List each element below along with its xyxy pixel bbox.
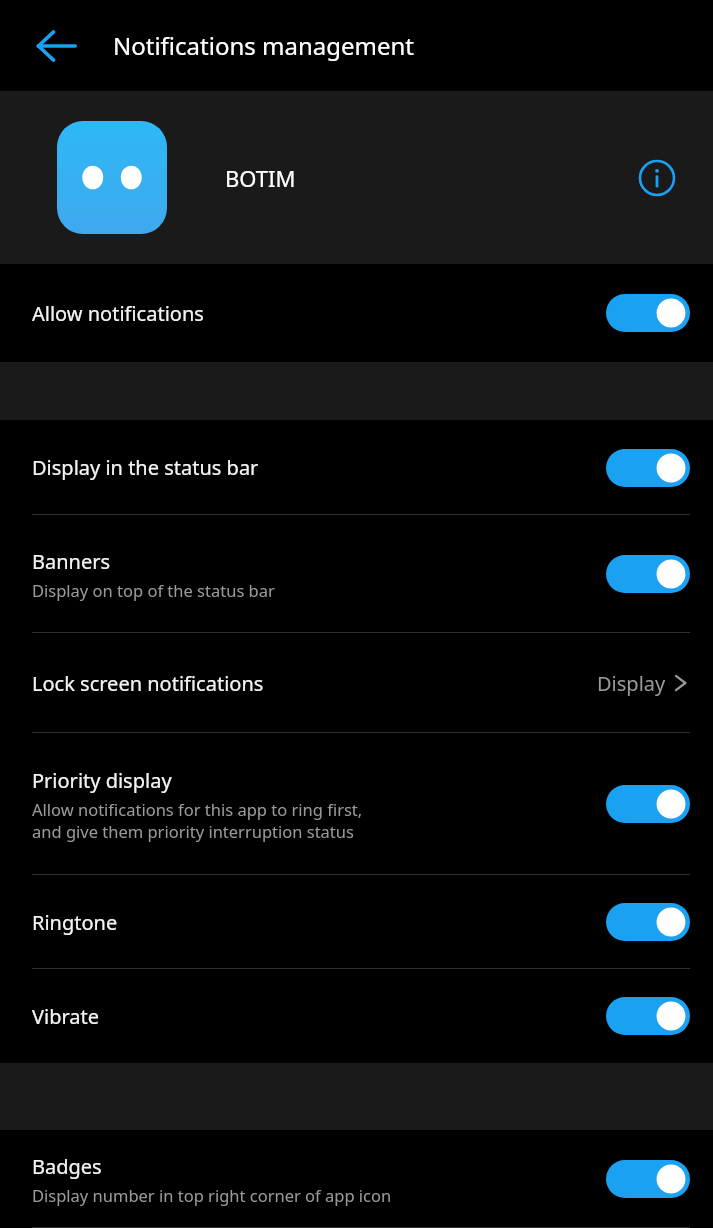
button[interactable]: Vibrate: [0, 969, 713, 1063]
staticText: Priority display: [32, 767, 172, 794]
button[interactable]: Display in the status bar: [0, 420, 713, 515]
button[interactable]: Toggle: [606, 449, 690, 487]
staticText: Banners: [32, 548, 111, 575]
button[interactable]: App info: [627, 148, 687, 208]
button[interactable]: Ringtone: [0, 875, 713, 969]
staticText: Lock screen notifications: [32, 670, 264, 697]
staticText: Allow notifications for this app to ring…: [32, 798, 363, 842]
staticText: Notifications management: [113, 29, 414, 62]
button[interactable]: Toggle: [606, 1160, 690, 1198]
staticText: Display: [597, 670, 666, 697]
button[interactable]: Back: [22, 12, 90, 80]
button[interactable]: Toggle: [606, 294, 690, 332]
button[interactable]: Banners: [0, 515, 713, 633]
staticText: Ringtone: [32, 909, 118, 936]
staticText: Allow notifications: [32, 300, 204, 327]
button[interactable]: Toggle: [606, 997, 690, 1035]
staticText: Vibrate: [32, 1003, 100, 1030]
staticText: Display on top of the status bar: [32, 579, 275, 601]
staticText: Display in the status bar: [32, 454, 259, 481]
button[interactable]: Toggle: [606, 903, 690, 941]
button[interactable]: Toggle: [606, 555, 690, 593]
button[interactable]: Badges: [0, 1130, 713, 1228]
button[interactable]: Lock screen notifications: [0, 633, 713, 733]
button[interactable]: Allow notifications: [0, 264, 713, 362]
staticText: BOTIM: [225, 163, 627, 193]
staticText: Display number in top right corner of ap…: [32, 1184, 392, 1206]
button[interactable]: Toggle: [606, 785, 690, 823]
button[interactable]: Priority display: [0, 733, 713, 875]
staticText: Badges: [32, 1153, 102, 1180]
